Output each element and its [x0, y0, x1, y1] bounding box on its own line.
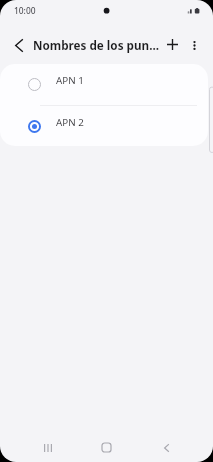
staticText: APN 1 — [56, 74, 84, 87]
button[interactable]: Recent apps — [26, 429, 69, 462]
button[interactable]: More options — [181, 32, 207, 58]
button[interactable]: Home — [85, 429, 128, 462]
staticText: APN 2 — [56, 116, 84, 129]
staticText: Nombres de los pun... — [33, 37, 159, 53]
button[interactable]: APN 1 — [0, 64, 208, 105]
button[interactable]: APN 2 — [0, 106, 208, 146]
button[interactable]: Navigate up — [5, 31, 33, 59]
button[interactable]: Add APN — [159, 31, 185, 57]
staticText: 10:00 — [14, 5, 36, 16]
button[interactable]: Back — [145, 429, 188, 462]
